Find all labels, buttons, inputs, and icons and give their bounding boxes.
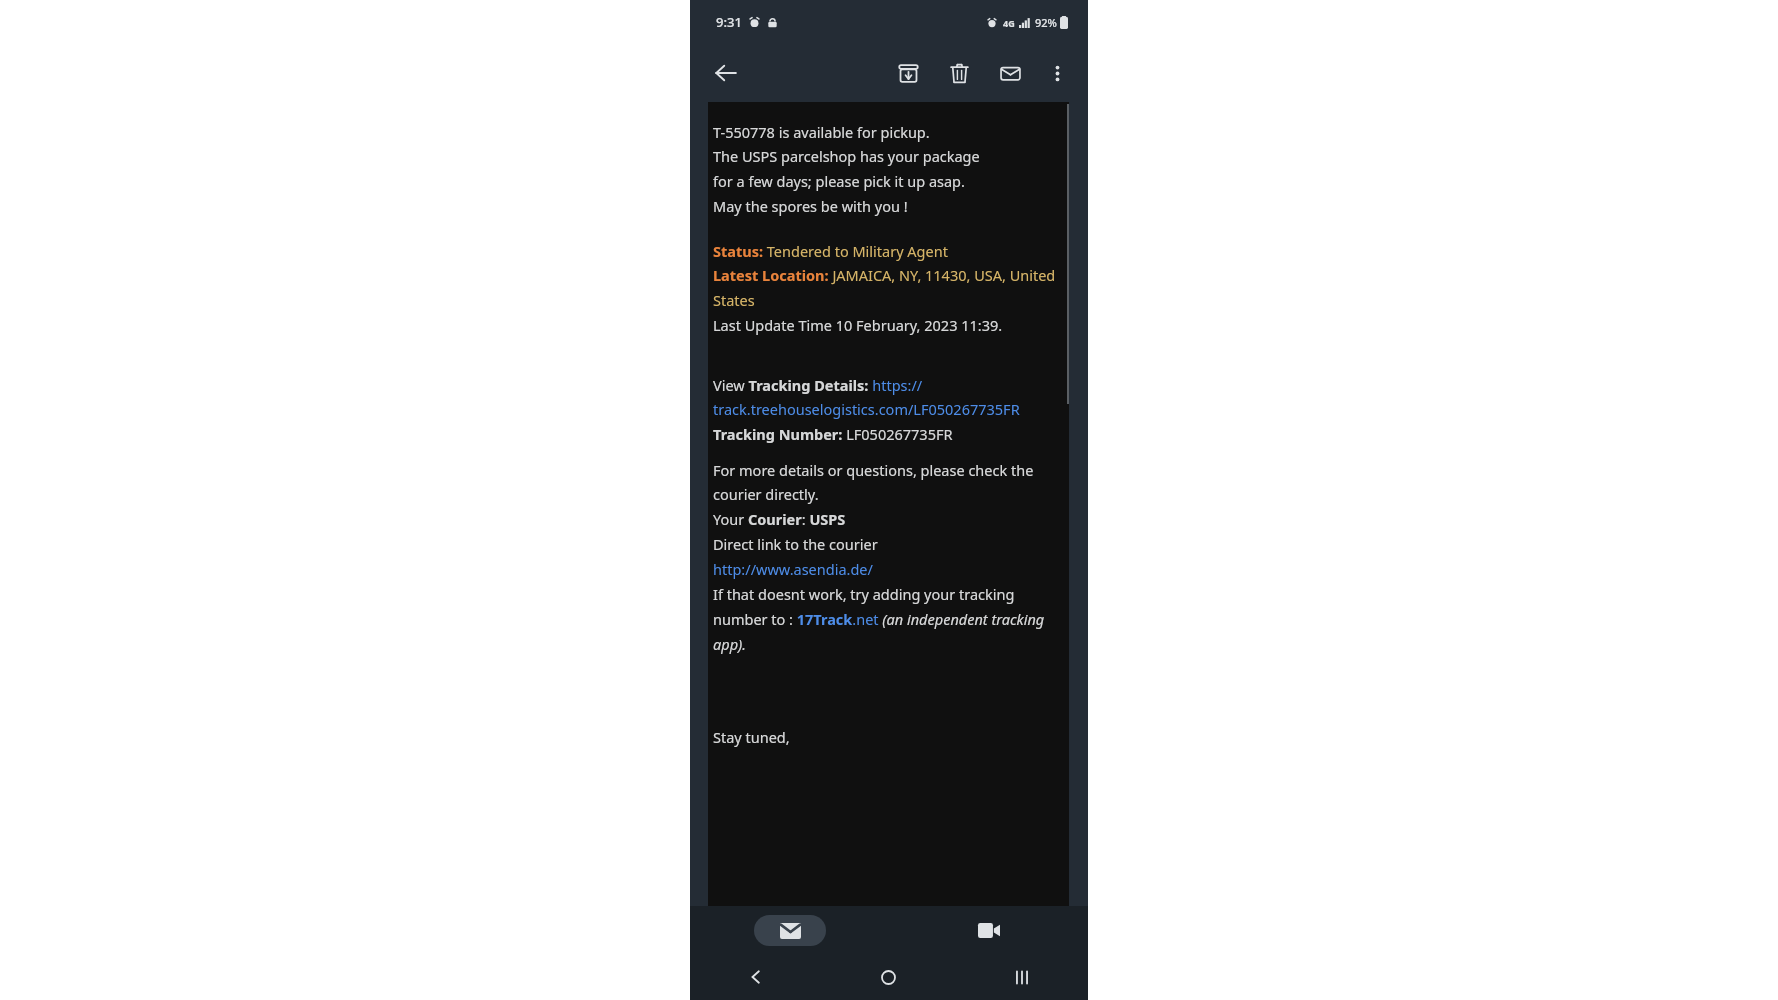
button[interactable]: Back (690, 954, 822, 1000)
button[interactable]: Email (754, 915, 826, 946)
button[interactable]: Video call (953, 915, 1025, 946)
button[interactable]: Mark unread (989, 52, 1031, 94)
button[interactable]: Home (822, 954, 955, 1000)
staticText: Status: Tendered to Military Agent Lates… (713, 241, 1061, 336)
staticText: T-550778 is available for pickup. The US… (713, 122, 980, 217)
staticText: View Tracking Details: https://track.tre… (713, 375, 1061, 445)
button[interactable]: Recent apps (955, 954, 1088, 1000)
button[interactable]: Archive (887, 52, 929, 94)
staticText: 4G (1003, 17, 1015, 29)
button[interactable]: More options (1036, 52, 1078, 94)
staticText: 9:31 (716, 13, 742, 31)
button[interactable]: Delete (938, 52, 980, 94)
staticText: Stay tuned, (713, 727, 790, 747)
staticText: 92% (1035, 15, 1057, 30)
button[interactable]: Back (704, 51, 748, 95)
staticText: For more details or questions, please ch… (713, 460, 1061, 655)
